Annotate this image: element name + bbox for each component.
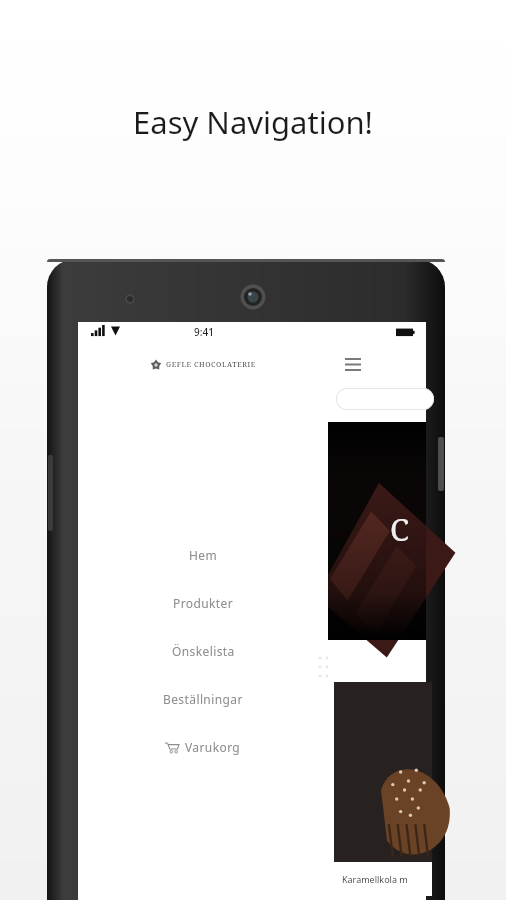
- staticText: 9:41: [194, 325, 214, 339]
- button[interactable]: C: [328, 422, 426, 640]
- staticText: Easy Navigation!: [133, 101, 373, 143]
- button[interactable]: Open menu: [345, 358, 361, 369]
- staticText: Hem: [189, 547, 218, 563]
- staticText: Produkter: [173, 595, 234, 611]
- button[interactable]: Karamellkola m: [328, 682, 426, 896]
- button[interactable]: [336, 388, 434, 410]
- staticText: Varukorg: [185, 739, 241, 755]
- staticText: Önskelista: [172, 643, 235, 659]
- button[interactable]: Beställningar: [78, 675, 328, 723]
- staticText: C: [390, 508, 410, 550]
- other: Shopping cart: [165, 740, 179, 754]
- staticText: Beställningar: [163, 691, 243, 707]
- staticText: Karamellkola m: [342, 873, 408, 885]
- staticText: GEFLE CHOCOLATERIE: [166, 360, 256, 370]
- button[interactable]: Shopping cart: [78, 723, 328, 771]
- button[interactable]: Produkter: [78, 579, 328, 627]
- button[interactable]: Önskelista: [78, 627, 328, 675]
- button[interactable]: Hem: [78, 531, 328, 579]
- button[interactable]: GEFLE CHOCOLATERIE: [78, 344, 328, 386]
